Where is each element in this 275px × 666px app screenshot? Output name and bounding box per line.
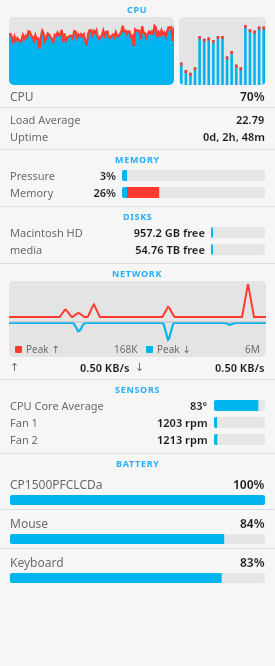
staticText: 1213 rpm (157, 432, 208, 447)
staticText: 22.79 (236, 112, 265, 127)
staticText: Memory (10, 185, 54, 200)
staticText: CPU Core Average (10, 398, 104, 413)
button[interactable]: Fan 2 (0, 431, 275, 448)
staticText: 83° (190, 398, 208, 413)
staticText: Keyboard (10, 554, 64, 570)
staticText: 26% (80, 185, 116, 200)
staticText: 168K (114, 342, 138, 356)
button[interactable]: Uptime (0, 128, 275, 145)
staticText: BATTERY (116, 457, 160, 469)
staticText: MEMORY (115, 153, 160, 165)
button[interactable]: Keyboard (0, 549, 275, 587)
staticText: ↓ (135, 361, 145, 374)
staticText: CPU (127, 3, 148, 15)
staticText: Peak ↓ (157, 342, 191, 356)
staticText: SENSORS (115, 383, 161, 395)
staticText: 1203 rpm (157, 415, 208, 430)
staticText: Load Average (10, 112, 81, 127)
button[interactable]: Pressure (0, 167, 275, 184)
staticText: media (10, 242, 43, 257)
staticText: 957.2 GB free (100, 225, 205, 240)
staticText: 0.50 KB/s (80, 360, 130, 375)
button[interactable]: Mouse (0, 510, 275, 548)
button[interactable]: Macintosh HD (0, 224, 275, 241)
button[interactable]: Memory (0, 184, 275, 201)
staticText: DISKS (123, 210, 153, 222)
button[interactable]: CP1500PFCLCDa (0, 471, 275, 509)
button[interactable]: ↑ (0, 357, 275, 377)
staticText: Fan 2 (10, 432, 38, 447)
button[interactable]: media (0, 241, 275, 258)
button[interactable]: Load Average (0, 111, 275, 128)
staticText: ↑ (10, 361, 20, 374)
staticText: 0d, 2h, 48m (203, 129, 265, 144)
staticText: 3% (80, 168, 116, 183)
button[interactable]: Fan 1 (0, 414, 275, 431)
staticText: Pressure (10, 168, 56, 183)
button[interactable] (0, 17, 275, 85)
staticText: 100% (233, 476, 265, 492)
staticText: 0.50 KB/s (215, 360, 265, 375)
staticText: CP1500PFCLCDa (10, 476, 103, 492)
button[interactable]: Peak ↑ (0, 281, 275, 357)
staticText: Fan 1 (10, 415, 38, 430)
staticText: 83% (240, 554, 265, 570)
staticText: Uptime (10, 129, 49, 144)
staticText: 70% (240, 88, 265, 104)
staticText: Mouse (10, 515, 49, 531)
staticText: 54.76 TB free (100, 242, 205, 257)
staticText: CPU (10, 88, 34, 104)
staticText: NETWORK (112, 267, 163, 279)
staticText: Peak ↑ (26, 342, 60, 356)
staticText: Macintosh HD (10, 225, 83, 240)
button[interactable]: CPU (0, 85, 275, 107)
staticText: 84% (240, 515, 265, 531)
staticText: 6M (245, 342, 260, 356)
button[interactable]: CPU Core Average (0, 397, 275, 414)
